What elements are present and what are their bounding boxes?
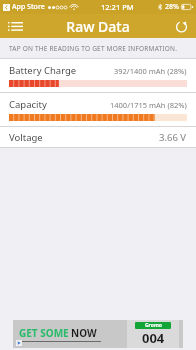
staticText: Raw Data: [66, 17, 130, 36]
staticText: 004: [142, 329, 165, 347]
button[interactable]: GET SOME: [13, 320, 183, 348]
staticText: 1400/1715 mAh (82%): [110, 100, 187, 110]
staticText: Battery Charge: [9, 64, 77, 77]
staticText: TAP ON THE READING TO GET MORE INFORMATI…: [9, 44, 178, 53]
button[interactable]: Capacity: [0, 93, 196, 126]
staticText: 392/1400 mAh (28%): [114, 66, 187, 76]
staticText: 28%: [165, 2, 179, 12]
staticText: Gromo: [145, 322, 162, 329]
button[interactable]: Menu: [5, 16, 25, 36]
button[interactable]: Battery Charge: [0, 59, 196, 92]
staticText: 3.66 V: [159, 131, 187, 144]
staticText: Capacity: [9, 98, 47, 111]
staticText: GET SOME: [19, 326, 69, 340]
staticText: App Store: [12, 2, 45, 12]
staticText: NOW: [71, 326, 97, 340]
staticText: 12:21 PM: [101, 2, 134, 12]
staticText: Voltage: [9, 131, 43, 144]
button[interactable]: Voltage: [0, 127, 196, 147]
button[interactable]: Refresh: [171, 16, 191, 36]
